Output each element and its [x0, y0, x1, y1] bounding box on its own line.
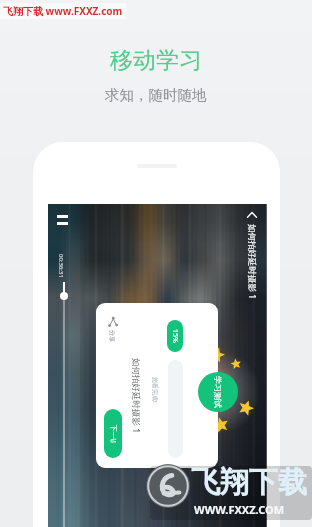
button[interactable]: Share	[107, 316, 119, 328]
button[interactable]: 学习测试	[198, 372, 238, 412]
staticText: 下一课	[108, 424, 117, 442]
staticText: 15%	[170, 329, 180, 343]
button[interactable]: Back	[245, 208, 259, 222]
staticText: 移动学习	[110, 46, 202, 75]
staticText: 如何拍好延时摄影 1	[130, 358, 142, 434]
staticText: 学习测试	[213, 376, 223, 408]
staticText: 飞翔下载 www.FXXZ.com	[3, 4, 123, 18]
button[interactable]: 下一课	[104, 409, 122, 458]
staticText: 00:36:31	[57, 254, 65, 278]
staticText: 飞翔下载	[191, 464, 307, 501]
button[interactable]: 15%	[167, 320, 183, 352]
staticText: 您看完成!	[151, 377, 159, 403]
staticText: 求知，随时随地	[105, 86, 207, 104]
staticText: 如何拍好延时摄影 1	[246, 224, 258, 300]
staticText: 分享	[108, 330, 116, 342]
button[interactable]: Pause	[57, 215, 68, 225]
staticText: WWW.FXXZ.COM	[194, 502, 285, 517]
